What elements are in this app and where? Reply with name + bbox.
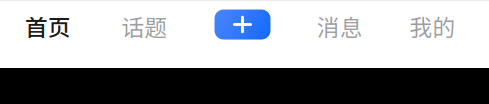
button[interactable]: 消息 bbox=[291, 0, 389, 52]
button[interactable]: 首页 bbox=[1, 0, 95, 52]
staticText: 消息 bbox=[317, 10, 363, 42]
staticText: 我的 bbox=[409, 10, 455, 42]
button[interactable]: 话题 bbox=[95, 0, 194, 52]
button[interactable]: 发布 bbox=[194, 0, 291, 52]
button[interactable]: 我的 bbox=[389, 0, 476, 52]
staticText: 话题 bbox=[121, 10, 167, 42]
staticText: 首页 bbox=[25, 10, 71, 42]
